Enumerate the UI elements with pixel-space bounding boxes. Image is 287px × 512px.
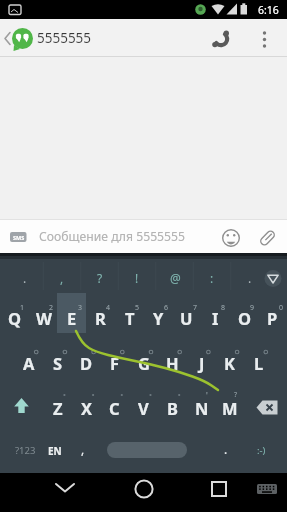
staticText: SMS — [13, 234, 25, 241]
staticText: ?123 — [15, 444, 36, 457]
staticText: 4 — [106, 303, 111, 313]
button[interactable] — [127, 473, 161, 512]
staticText: O — [238, 307, 252, 329]
staticText: 9 — [250, 303, 255, 313]
staticText: ? — [97, 270, 103, 286]
button[interactable]: L — [244, 340, 273, 385]
button[interactable]: G — [129, 340, 158, 385]
button[interactable]: H — [158, 340, 187, 385]
staticText: U — [180, 307, 193, 329]
staticText: ? — [234, 390, 238, 400]
staticText: , — [60, 270, 64, 286]
button[interactable]: , — [48, 261, 76, 295]
staticText: B — [167, 397, 178, 419]
button[interactable]: . — [236, 261, 264, 295]
staticText: 5555555 — [37, 29, 92, 47]
staticText: P — [267, 307, 278, 329]
button[interactable]: E — [57, 295, 86, 340]
button[interactable]: Y — [144, 295, 173, 340]
staticText: Сообщение для 5555555 — [39, 228, 185, 245]
button[interactable]: M — [215, 385, 244, 430]
staticText: I — [212, 307, 219, 329]
button[interactable] — [0, 19, 200, 57]
staticText: . — [224, 441, 228, 457]
button[interactable]: :-) — [250, 428, 272, 473]
staticText: : — [210, 270, 214, 286]
button[interactable] — [48, 473, 82, 512]
button[interactable]: Z — [43, 385, 72, 430]
staticText: ' — [206, 390, 208, 401]
staticText: @ — [170, 270, 181, 286]
staticText: G — [138, 352, 150, 374]
button[interactable]: O — [230, 295, 259, 340]
button[interactable]: T — [115, 295, 144, 340]
button[interactable]: ? — [86, 261, 114, 295]
staticText: R — [95, 307, 106, 329]
button[interactable]: K — [215, 340, 244, 385]
staticText: ! — [135, 270, 139, 286]
staticText: 8 — [221, 303, 226, 313]
button[interactable]: P — [258, 295, 287, 340]
button[interactable] — [0, 383, 43, 428]
staticText: 3 — [78, 303, 83, 313]
staticText: X — [81, 397, 93, 419]
staticText: A — [23, 352, 35, 374]
button[interactable]: ?123 — [8, 428, 42, 473]
button[interactable] — [250, 19, 280, 57]
button[interactable]: N — [187, 385, 216, 430]
staticText: . — [248, 270, 252, 286]
staticText: E — [67, 307, 77, 329]
staticText: Y — [153, 307, 164, 329]
button[interactable] — [206, 19, 238, 57]
button[interactable]: @ — [161, 261, 189, 295]
staticText: Q — [8, 307, 22, 329]
staticText: 1 — [20, 303, 25, 313]
staticText: T — [125, 307, 135, 329]
staticText: W — [36, 307, 52, 329]
button[interactable]: EN — [44, 428, 66, 473]
staticText: H — [166, 352, 179, 374]
button[interactable]: Q — [0, 295, 29, 340]
button[interactable]: . — [11, 261, 39, 295]
staticText: , — [81, 441, 85, 457]
staticText: 6 — [164, 303, 169, 313]
staticText: L — [254, 352, 264, 374]
button[interactable]: U — [172, 295, 201, 340]
button[interactable] — [252, 473, 282, 512]
staticText: 7 — [193, 303, 198, 313]
button[interactable]: A — [14, 340, 43, 385]
staticText: C — [109, 397, 120, 419]
staticText: 6:16 — [258, 3, 279, 17]
staticText: 2 — [49, 303, 54, 313]
button[interactable]: S — [43, 340, 72, 385]
button[interactable] — [244, 383, 287, 428]
button[interactable]: F — [100, 340, 129, 385]
button[interactable]: W — [29, 295, 58, 340]
button[interactable] — [202, 473, 236, 512]
staticText: F — [110, 352, 120, 374]
staticText: D — [80, 352, 93, 374]
button[interactable]: . — [219, 426, 233, 471]
button[interactable]: R — [86, 295, 115, 340]
staticText: N — [195, 397, 209, 419]
button[interactable]: ! — [123, 261, 151, 295]
button[interactable]: D — [72, 340, 101, 385]
button[interactable]: V — [129, 385, 158, 430]
staticText: EN — [48, 444, 62, 458]
staticText: S — [53, 352, 63, 374]
button[interactable]: J — [187, 340, 216, 385]
button[interactable]: , — [76, 426, 90, 471]
button[interactable]: I — [201, 295, 230, 340]
staticText: M — [222, 397, 238, 419]
button[interactable]: C — [100, 385, 129, 430]
staticText: Z — [53, 397, 63, 419]
staticText: 0 — [279, 303, 284, 313]
button[interactable]: : — [198, 261, 226, 295]
staticText: :-) — [257, 444, 266, 457]
staticText: V — [138, 397, 149, 419]
button[interactable] — [107, 442, 187, 458]
button[interactable]: X — [72, 385, 101, 430]
staticText: 5 — [135, 303, 140, 313]
button[interactable]: SMS — [0, 219, 287, 253]
button[interactable]: B — [158, 385, 187, 430]
